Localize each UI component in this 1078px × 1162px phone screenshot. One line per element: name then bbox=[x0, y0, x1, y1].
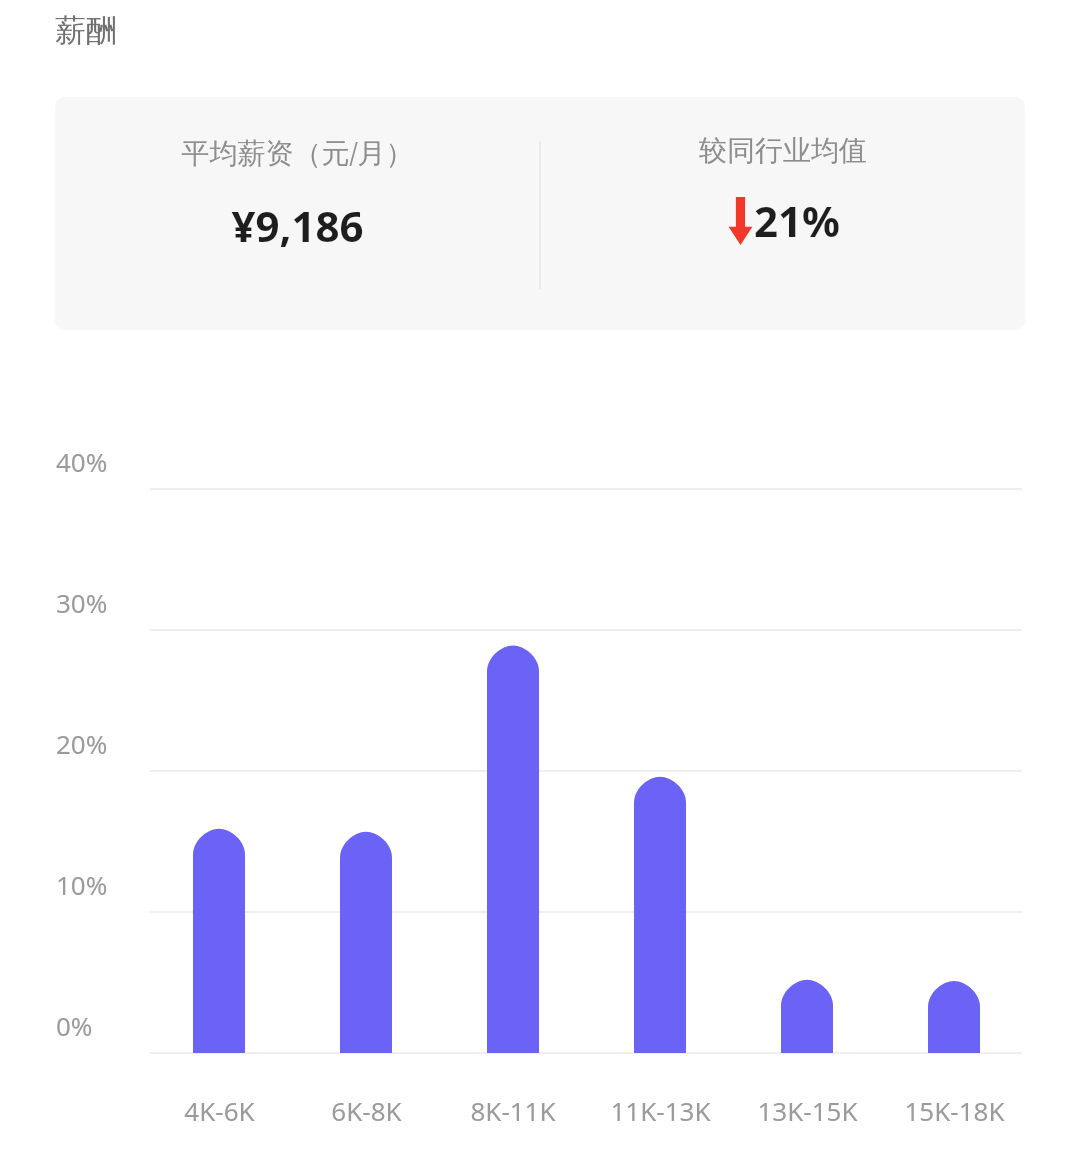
other: Below industry average bbox=[727, 197, 754, 245]
staticText: 8K-11K bbox=[470, 1093, 556, 1128]
staticText: 21% bbox=[754, 192, 840, 249]
staticText: ¥9,186 bbox=[231, 197, 364, 254]
button[interactable]: 15K-18K bbox=[881, 1090, 1027, 1130]
staticText: 20% bbox=[56, 726, 108, 761]
staticText: 40% bbox=[56, 444, 108, 479]
staticText: 平均薪资（元/月） bbox=[181, 133, 414, 171]
button[interactable]: 4K-6K bbox=[146, 1090, 292, 1130]
button[interactable]: 8K-11K bbox=[440, 1090, 586, 1130]
staticText: 较同行业均值 bbox=[699, 133, 867, 168]
staticText: 10% bbox=[56, 867, 108, 902]
staticText: 0% bbox=[56, 1008, 93, 1043]
staticText: 15K-18K bbox=[904, 1093, 1005, 1128]
staticText: 13K-15K bbox=[757, 1093, 858, 1128]
button[interactable]: 11K-13K bbox=[587, 1090, 733, 1130]
button[interactable]: 6K-8K bbox=[293, 1090, 439, 1130]
staticText: 6K-8K bbox=[331, 1093, 402, 1128]
staticText: 11K-13K bbox=[610, 1093, 711, 1128]
button[interactable]: 13K-15K bbox=[734, 1090, 880, 1130]
staticText: 薪酬 bbox=[55, 11, 117, 50]
staticText: 4K-6K bbox=[184, 1093, 255, 1128]
button[interactable]: 平均薪资（元/月） bbox=[55, 97, 1025, 330]
staticText: 30% bbox=[56, 585, 108, 620]
